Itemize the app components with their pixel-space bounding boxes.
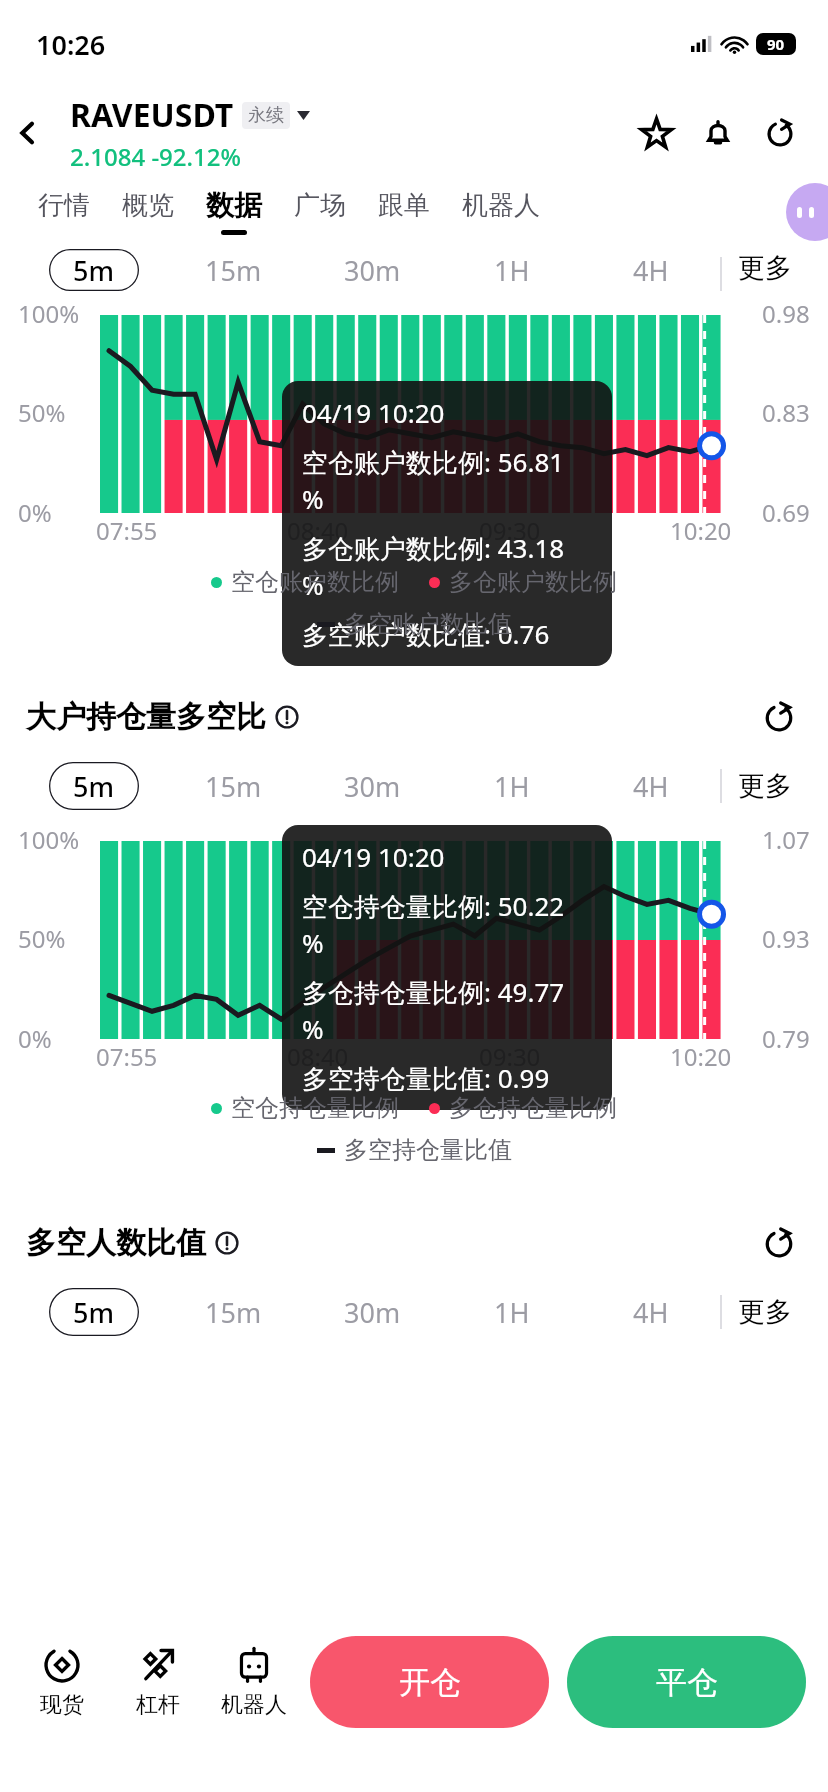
button[interactable]: 4H <box>581 249 720 291</box>
staticText: 09:30 <box>479 1040 541 1073</box>
staticText: 100% <box>18 823 80 856</box>
staticText: 多空持仓量比值: 0.99 <box>302 1060 550 1096</box>
button[interactable]: 15m <box>164 1287 303 1337</box>
staticText: 30m <box>344 1294 401 1331</box>
button[interactable]: 机器人 <box>206 1642 302 1723</box>
staticText: 更多 <box>738 1295 792 1329</box>
staticText: 开仓 <box>399 1663 461 1702</box>
button[interactable]: 4H <box>581 761 720 811</box>
staticText: 10:20 <box>670 1040 732 1073</box>
staticText: 09:30 <box>479 514 541 547</box>
staticText: 行情 <box>38 189 90 222</box>
button[interactable]: 30m <box>303 1287 442 1337</box>
staticText: 90 <box>767 34 785 54</box>
staticText: 04/19 10:20 <box>302 395 445 430</box>
staticText: 50% <box>18 396 66 429</box>
staticText: 0.79 <box>762 1022 810 1055</box>
staticText: 08:40 <box>287 514 349 547</box>
staticText: 5m <box>73 1294 115 1331</box>
button[interactable]: 更多 <box>722 245 808 291</box>
staticText: 08:40 <box>287 1040 349 1073</box>
button[interactable]: 跟单 <box>362 178 446 244</box>
button[interactable]: 4H <box>581 1287 720 1337</box>
button[interactable]: 1H <box>442 1287 581 1337</box>
button[interactable]: 15m <box>164 249 303 291</box>
button[interactable]: 30m <box>303 249 442 291</box>
staticText: 空仓持仓量比例: 50.22 % <box>302 888 592 960</box>
button[interactable]: 30m <box>303 761 442 811</box>
staticText: 0.93 <box>762 922 810 955</box>
staticText: 0% <box>18 1022 52 1055</box>
staticText: 07:55 <box>96 514 158 547</box>
staticText: 04/19 10:20 <box>302 839 445 874</box>
staticText: 永续 <box>248 104 284 127</box>
staticText: 30m <box>344 252 401 289</box>
staticText: 更多 <box>738 769 792 803</box>
staticText: 0.69 <box>762 496 810 529</box>
staticText: 1H <box>494 252 530 289</box>
staticText: 多空账户数比值 <box>344 609 512 639</box>
staticText: 机器人 <box>221 1691 287 1719</box>
button[interactable]: 5m <box>24 249 164 291</box>
staticText: 10:20 <box>670 514 732 547</box>
staticText: 广场 <box>294 189 346 222</box>
button[interactable]: 收藏 <box>632 109 680 157</box>
button[interactable]: 分享 <box>756 1220 802 1266</box>
button[interactable]: 助手 <box>786 183 828 241</box>
button[interactable]: 15m <box>164 761 303 811</box>
staticText: 4H <box>633 768 669 805</box>
staticText: 空仓持仓量比例 <box>231 1093 399 1123</box>
staticText: 现货 <box>40 1691 84 1719</box>
button[interactable]: 更多 <box>722 1287 808 1337</box>
staticText: 数据 <box>206 188 262 223</box>
staticText: 5m <box>73 252 115 289</box>
button[interactable]: 1H <box>442 761 581 811</box>
button[interactable]: 行情 <box>22 178 106 244</box>
staticText: 15m <box>205 768 262 805</box>
staticText: 30m <box>344 768 401 805</box>
staticText: 10:26 <box>36 26 106 63</box>
staticText: 0% <box>18 496 52 529</box>
staticText: 空仓账户数比例: 56.81 % <box>302 444 592 516</box>
staticText: 更多 <box>738 251 792 285</box>
staticText: 空仓账户数比例 <box>231 567 399 597</box>
staticText: 15m <box>205 1294 262 1331</box>
staticText: 多仓持仓量比例: 49.77 % <box>302 974 592 1046</box>
button[interactable]: 现货 <box>14 1642 110 1723</box>
staticText: 5m <box>73 768 115 805</box>
button[interactable]: 1H <box>442 249 581 291</box>
staticText: 机器人 <box>462 189 540 222</box>
button[interactable]: 返回 <box>0 105 56 161</box>
staticText: 50% <box>18 922 66 955</box>
staticText: 多空持仓量比值 <box>344 1135 512 1165</box>
button[interactable]: 广场 <box>278 178 362 244</box>
button[interactable]: 概览 <box>106 178 190 244</box>
staticText: 4H <box>633 252 669 289</box>
staticText: 大户持仓量多空比 <box>26 698 266 736</box>
staticText: 2.1084 -92.12% <box>70 140 241 173</box>
staticText: 4H <box>633 1294 669 1331</box>
staticText: 平仓 <box>656 1663 718 1702</box>
button[interactable]: 分享 <box>756 109 804 157</box>
staticText: 1.07 <box>762 823 810 856</box>
button[interactable]: 5m <box>24 1287 164 1337</box>
staticText: RAVEUSDT <box>70 93 234 137</box>
button[interactable]: 杠杆 <box>110 1642 206 1723</box>
staticText: 多空人数比值 <box>26 1224 206 1262</box>
staticText: 07:55 <box>96 1040 158 1073</box>
staticText: 多仓账户数比例: 43.18 % <box>302 530 592 602</box>
staticText: 多空账户数比值: 0.76 <box>302 616 550 652</box>
staticText: 多仓持仓量比例 <box>449 1093 617 1123</box>
staticText: 1H <box>494 1294 530 1331</box>
button[interactable]: 分享 <box>756 694 802 740</box>
button[interactable]: 5m <box>24 761 164 811</box>
button[interactable]: 机器人 <box>446 178 556 244</box>
staticText: 0.98 <box>762 297 810 330</box>
button[interactable]: 开仓 <box>310 1636 549 1728</box>
staticText: 多仓账户数比例 <box>449 567 617 597</box>
button[interactable]: 更多 <box>722 761 808 811</box>
button[interactable]: 平仓 <box>567 1636 806 1728</box>
button[interactable]: 提醒 <box>694 109 742 157</box>
button[interactable]: 数据 <box>190 178 278 244</box>
staticText: 15m <box>205 252 262 289</box>
